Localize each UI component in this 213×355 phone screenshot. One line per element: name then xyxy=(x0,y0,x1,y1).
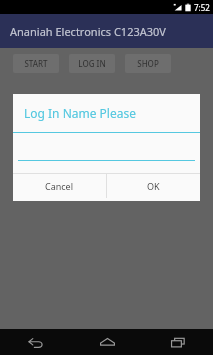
staticText: SHOP xyxy=(137,58,159,69)
staticText: Cancel xyxy=(45,180,74,192)
staticText: Ananiah Electronics C123A30V xyxy=(10,24,166,39)
staticText: OK xyxy=(147,180,160,192)
staticText: START xyxy=(24,58,48,69)
button[interactable]: START xyxy=(13,54,59,73)
staticText: Log In Name Please xyxy=(24,105,136,121)
staticText: LOG IN xyxy=(78,58,106,69)
button[interactable]: LOG IN xyxy=(69,54,115,73)
button[interactable]: OK xyxy=(107,174,200,198)
button[interactable]: Back xyxy=(19,331,53,353)
button[interactable]: Home xyxy=(90,331,124,353)
button[interactable]: SHOP xyxy=(125,54,171,73)
button[interactable]: Cancel xyxy=(13,174,106,198)
button[interactable] xyxy=(13,133,200,161)
button[interactable]: Recent apps xyxy=(161,331,195,353)
staticText: 7:52 xyxy=(194,2,210,13)
